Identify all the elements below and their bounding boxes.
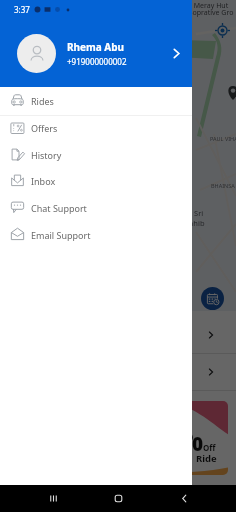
staticText: Ride	[196, 452, 217, 465]
staticText: PAUL VIHAR	[210, 135, 236, 142]
button[interactable]: Chat Support	[0, 194, 192, 221]
button[interactable]: Home	[109, 485, 127, 512]
staticText: +919000000002	[67, 56, 127, 67]
staticText: Off	[203, 442, 216, 453]
button[interactable]: Email Support	[0, 221, 192, 248]
button[interactable]: Rides	[0, 87, 192, 114]
staticText: Rhema Abu	[67, 40, 125, 54]
staticText: e Meray Hut	[188, 1, 229, 11]
staticText: Email Support	[31, 229, 91, 241]
staticText: 0	[192, 431, 204, 457]
button[interactable]: 5	[130, 401, 228, 475]
staticText: 3:37	[14, 4, 30, 15]
staticText: BHAINSA	[211, 182, 235, 189]
staticText: ra Sri Sahib	[185, 208, 205, 228]
button[interactable]: Back	[175, 485, 193, 512]
button[interactable]: Schedule a ride	[201, 287, 224, 310]
staticText: o-oprative Gro	[186, 8, 234, 18]
button[interactable]	[0, 354, 236, 390]
staticText: Chat Support	[31, 202, 87, 214]
staticText: Inbox	[31, 175, 56, 187]
button[interactable]: My location	[214, 22, 230, 38]
staticText: Rides	[31, 95, 54, 107]
staticText: History	[31, 149, 62, 161]
button[interactable]: History	[0, 141, 192, 168]
button[interactable]: Recents	[44, 485, 62, 512]
staticText: %	[179, 425, 194, 445]
button[interactable]: Rhema Abu	[0, 33, 192, 73]
staticText: Offers	[31, 122, 58, 134]
button[interactable]: Offers	[0, 114, 192, 141]
button[interactable]	[0, 317, 236, 353]
button[interactable]: Inbox	[0, 167, 192, 194]
